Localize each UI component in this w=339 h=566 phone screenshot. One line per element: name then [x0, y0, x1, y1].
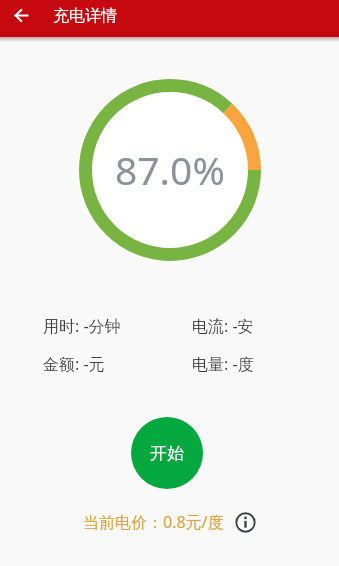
button[interactable] — [8, 2, 35, 29]
staticText: 电量: -度 — [192, 353, 254, 375]
button[interactable]: 开始 — [131, 417, 203, 489]
staticText: 开始 — [150, 443, 184, 464]
staticText: 充电详情 — [53, 6, 117, 26]
staticText: 金额: -元 — [43, 353, 105, 375]
staticText: 电流: -安 — [192, 315, 254, 337]
button[interactable] — [234, 511, 256, 533]
staticText: 当前电价：0.8元/度 — [83, 511, 224, 533]
staticText: 87.0% — [115, 143, 225, 196]
staticText: 用时: -分钟 — [43, 315, 121, 337]
